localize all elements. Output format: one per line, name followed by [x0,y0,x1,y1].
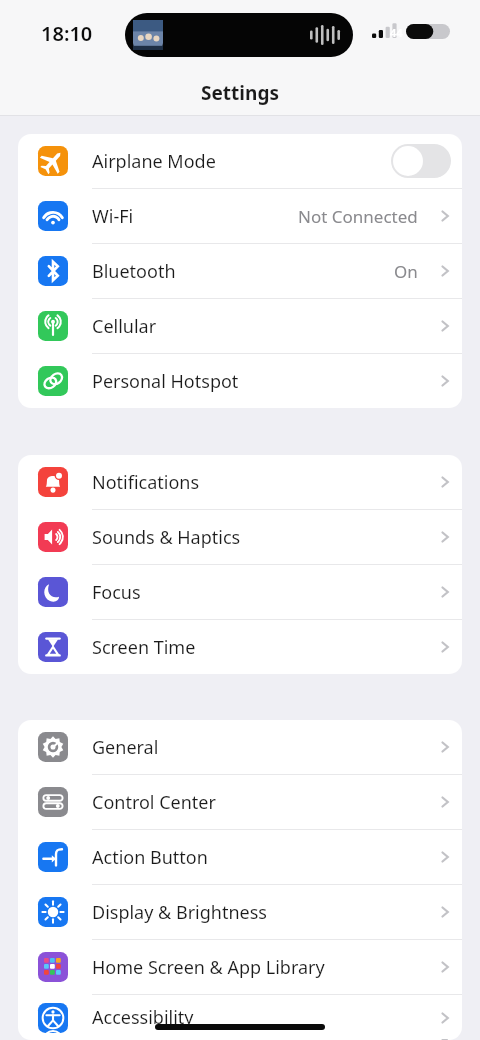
staticText: On [394,260,418,283]
button[interactable]: General [18,720,462,774]
button[interactable]: Sounds & Haptics [18,510,462,564]
button[interactable]: Cellular [18,299,462,353]
staticText: Bluetooth [92,259,176,284]
staticText: Wi-Fi [92,204,134,229]
staticText: Screen Time [92,635,196,660]
staticText: Focus [92,580,141,605]
staticText: 44 [390,25,403,40]
button[interactable]: Personal Hotspot [18,354,462,408]
button[interactable]: Action Button [18,830,462,884]
button[interactable]: Bluetooth [18,244,462,298]
button[interactable]: Focus [18,565,462,619]
staticText: Control Center [92,790,216,815]
staticText: Airplane Mode [92,149,216,174]
button[interactable]: Airplane Mode [18,134,462,188]
staticText: Home Screen & App Library [92,955,325,980]
button[interactable]: Wi-Fi [18,189,462,243]
staticText: Sounds & Haptics [92,525,241,550]
staticText: Personal Hotspot [92,369,239,394]
button[interactable]: Accessibility [18,995,462,1040]
button[interactable]: Home Screen & App Library [18,940,462,994]
button[interactable]: Screen Time [18,620,462,674]
button[interactable]: Control Center [18,775,462,829]
button[interactable]: Airplane Mode toggle [391,144,451,178]
staticText: Settings [0,80,480,106]
staticText: Display & Brightness [92,900,267,925]
staticText: General [92,735,159,760]
button[interactable]: Notifications [18,455,462,509]
staticText: Action Button [92,845,208,870]
staticText: Cellular [92,314,157,339]
staticText: 18:10 [41,20,93,47]
staticText: Notifications [92,470,200,495]
staticText: Not Connected [298,205,418,228]
staticText: Accessibility [92,1005,194,1030]
button[interactable]: Display & Brightness [18,885,462,939]
